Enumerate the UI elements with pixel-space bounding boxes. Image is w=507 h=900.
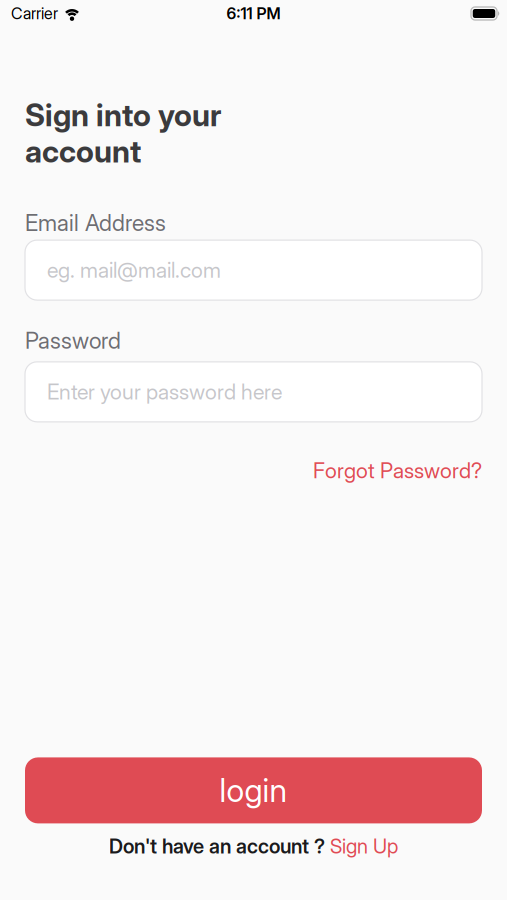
- staticText: Don't have an account ?: [109, 834, 330, 858]
- button[interactable]: eg. mail@mail.com: [25, 240, 482, 300]
- button[interactable]: Forgot Password?: [313, 458, 482, 483]
- button[interactable]: login: [25, 757, 482, 823]
- staticText: Email Address: [25, 209, 166, 236]
- staticText: Carrier: [11, 4, 58, 23]
- staticText: 6:11 PM: [226, 4, 280, 23]
- staticText: Enter your password here: [47, 379, 282, 404]
- staticText: Forgot Password?: [313, 458, 482, 483]
- staticText: Password: [25, 327, 121, 354]
- staticText: Sign Up: [330, 834, 398, 858]
- staticText: login: [219, 771, 287, 809]
- button[interactable]: Sign Up: [330, 834, 398, 858]
- staticText: eg. mail@mail.com: [47, 257, 221, 283]
- staticText: Sign into your account: [25, 97, 221, 169]
- button[interactable]: Enter your password here: [25, 362, 482, 422]
